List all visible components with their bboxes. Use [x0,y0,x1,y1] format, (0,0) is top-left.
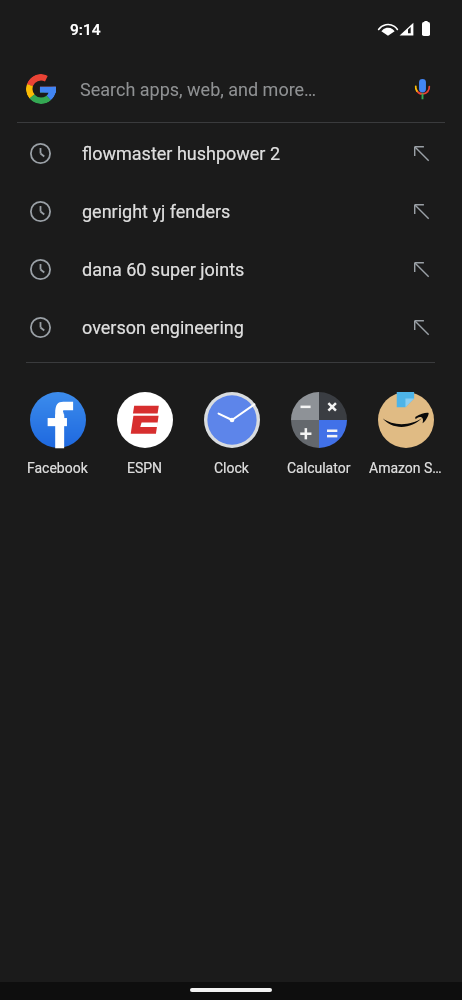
button[interactable]: Use suggestion genright yj fenders [401,191,441,231]
button[interactable]: Use suggestion dana 60 super joints [401,249,441,289]
button[interactable]: dana 60 super joints [0,240,462,298]
button[interactable]: flowmaster hushpower 2 [0,124,462,182]
button[interactable]: Clock [188,392,275,476]
staticText: Calculator [287,460,351,476]
button[interactable]: Calculator [275,392,362,476]
other: Home [190,988,272,992]
button[interactable]: Use suggestion flowmaster hushpower 2 [401,133,441,173]
staticText: flowmaster hushpower 2 [82,143,281,164]
staticText: ESPN [127,460,163,476]
staticText: Facebook [27,460,88,476]
button[interactable]: Search apps, web, and more… [0,56,462,122]
button[interactable]: ESPN [101,392,188,476]
button[interactable]: overson engineering [0,298,462,356]
staticText: Clock [214,460,249,476]
staticText: Amazon S… [369,460,442,476]
staticText: dana 60 super joints [82,259,245,280]
staticText: Search apps, web, and more… [80,79,317,100]
staticText: genright yj fenders [82,201,231,222]
staticText: 9:14 [70,21,101,39]
button[interactable]: Facebook [14,392,101,476]
button[interactable]: Voice search [401,68,443,110]
button[interactable]: Amazon S… [362,392,449,476]
staticText: overson engineering [82,317,244,338]
button[interactable]: genright yj fenders [0,182,462,240]
button[interactable]: Use suggestion overson engineering [401,307,441,347]
